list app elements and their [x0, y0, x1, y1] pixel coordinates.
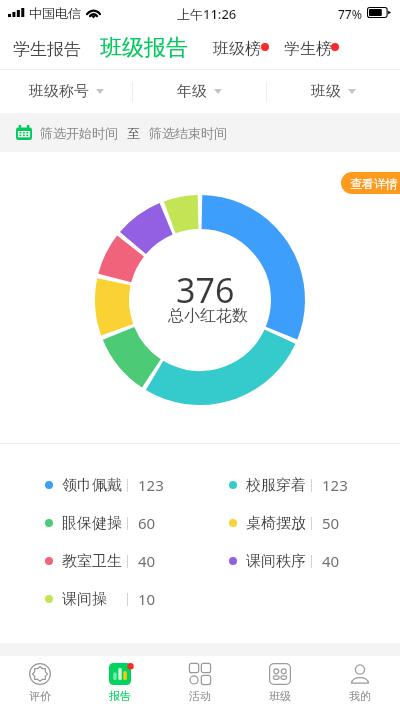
staticText: 77% [338, 6, 362, 22]
staticText: 班级报告 [100, 34, 188, 62]
staticText: 总小红花数 [168, 306, 248, 326]
staticText: 查看详情 [350, 176, 398, 191]
button[interactable]: 我的 [320, 656, 400, 710]
button[interactable]: 班级榜 [213, 39, 261, 59]
button[interactable]: 班级称号 [0, 70, 132, 113]
staticText: 40 [322, 551, 340, 571]
button[interactable]: 报告 [80, 656, 160, 710]
staticText: 上午11:26 [177, 5, 237, 23]
staticText: 至 [127, 125, 140, 141]
staticText: 班级称号 [29, 82, 89, 101]
staticText: 筛选开始时间 [40, 125, 118, 141]
button[interactable]: 班级 [240, 656, 320, 710]
other: Calendar [16, 125, 32, 140]
button[interactable]: 活动 [160, 656, 240, 710]
staticText: 桌椅摆放 [246, 514, 306, 533]
staticText: 校服穿着 [246, 476, 306, 495]
staticText: 班级 [269, 689, 291, 703]
staticText: 123 [138, 475, 164, 495]
staticText: 我的 [349, 689, 371, 703]
staticText: 眼保健操 [62, 514, 122, 533]
button[interactable]: 筛选开始时间 [40, 125, 118, 141]
button[interactable]: 课间操 [45, 586, 156, 612]
button[interactable]: 年级 [133, 70, 266, 113]
button[interactable]: 班级报告 [100, 34, 188, 62]
staticText: 学生榜 [284, 39, 332, 59]
button[interactable]: 学生榜 [284, 39, 332, 59]
staticText: 教室卫生 [62, 552, 122, 571]
staticText: 活动 [189, 689, 211, 703]
staticText: 中国电信 [29, 5, 81, 21]
staticText: 60 [138, 513, 156, 533]
staticText: 课间秩序 [246, 552, 306, 571]
staticText: 376 [176, 267, 235, 313]
staticText: 年级 [177, 82, 207, 101]
button[interactable]: 校服穿着 [229, 472, 348, 498]
button[interactable]: 眼保健操 [45, 510, 156, 536]
button[interactable]: 学生报告 [13, 39, 81, 60]
staticText: 学生报告 [13, 39, 81, 60]
staticText: 报告 [109, 689, 131, 703]
staticText: 40 [138, 551, 156, 571]
button[interactable]: 查看详情 [341, 172, 400, 194]
button[interactable]: 课间秩序 [229, 548, 340, 574]
staticText: 123 [322, 475, 348, 495]
button[interactable]: 教室卫生 [45, 548, 156, 574]
button[interactable]: 评价 [0, 656, 80, 710]
staticText: 筛选结束时间 [149, 125, 227, 141]
staticText: 10 [138, 589, 156, 609]
button[interactable]: 班级 [267, 70, 400, 113]
staticText: 班级榜 [213, 39, 261, 59]
button[interactable]: 筛选结束时间 [149, 125, 227, 141]
button[interactable]: 桌椅摆放 [229, 510, 340, 536]
button[interactable]: 领巾佩戴 [45, 472, 164, 498]
staticText: 评价 [29, 689, 51, 703]
staticText: 课间操 [62, 590, 107, 609]
staticText: 领巾佩戴 [62, 476, 122, 495]
staticText: 班级 [311, 82, 341, 101]
staticText: 50 [322, 513, 340, 533]
